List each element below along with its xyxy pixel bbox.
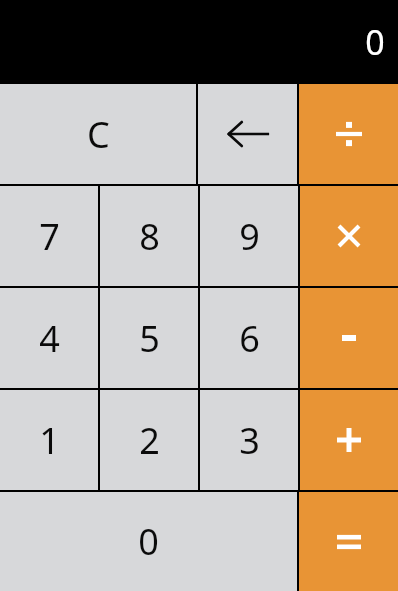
staticText: 4 xyxy=(39,314,60,363)
staticText: C xyxy=(87,110,110,159)
staticText: 6 xyxy=(239,314,260,363)
staticText: 8 xyxy=(139,212,160,261)
button[interactable]: 6 xyxy=(200,288,298,388)
button[interactable]: 9 xyxy=(200,186,298,286)
button[interactable]: Plus xyxy=(300,390,398,490)
staticText: 9 xyxy=(239,212,260,261)
button[interactable]: Equals xyxy=(299,492,398,591)
button[interactable]: Minus xyxy=(300,288,398,388)
button[interactable]: Multiply xyxy=(300,186,398,286)
staticText: 0 xyxy=(138,517,159,566)
button[interactable]: Divide xyxy=(299,84,398,184)
button[interactable]: 0 xyxy=(0,492,297,591)
button[interactable]: 2 xyxy=(100,390,198,490)
button[interactable]: 8 xyxy=(100,186,198,286)
staticText: 0 xyxy=(365,19,385,65)
button[interactable]: C xyxy=(0,84,196,184)
staticText: 1 xyxy=(39,416,60,465)
button[interactable]: 4 xyxy=(0,288,98,388)
button[interactable]: 3 xyxy=(200,390,298,490)
button[interactable]: 7 xyxy=(0,186,98,286)
button[interactable]: 5 xyxy=(100,288,198,388)
staticText: 5 xyxy=(139,314,160,363)
staticText: 7 xyxy=(39,212,60,261)
staticText: 3 xyxy=(239,416,260,465)
button[interactable]: Backspace xyxy=(198,84,297,184)
staticText: 2 xyxy=(139,416,160,465)
button[interactable]: 1 xyxy=(0,390,98,490)
